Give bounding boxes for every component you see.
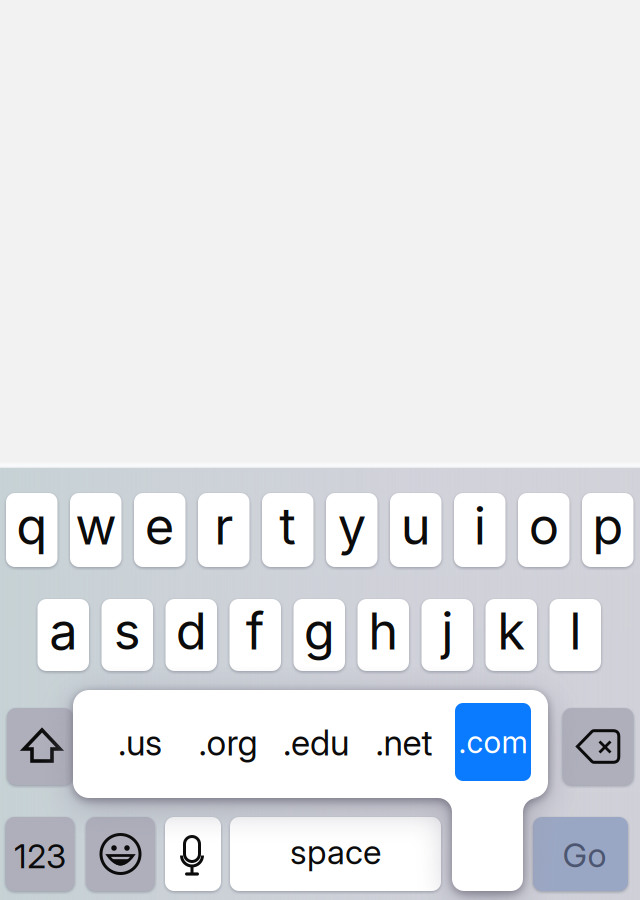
staticText: t xyxy=(279,495,296,557)
button[interactable]: g xyxy=(293,599,345,671)
button[interactable]: p xyxy=(582,493,633,567)
button[interactable]: q xyxy=(6,493,57,567)
button[interactable]: o xyxy=(518,493,569,567)
button[interactable]: t xyxy=(262,493,313,567)
button[interactable]: .edu xyxy=(274,698,358,792)
staticText: .us xyxy=(118,722,162,764)
staticText: l xyxy=(569,600,581,662)
button[interactable]: l xyxy=(549,599,601,671)
staticText: o xyxy=(529,495,559,557)
button[interactable]: Go xyxy=(533,817,628,891)
staticText: Go xyxy=(562,835,606,875)
button[interactable]: e xyxy=(134,493,185,567)
staticText: d xyxy=(176,600,207,662)
button[interactable]: r xyxy=(198,493,249,567)
button[interactable]: i xyxy=(454,493,505,567)
staticText: 123 xyxy=(14,836,66,876)
button[interactable]: d xyxy=(165,599,217,671)
button[interactable]: a xyxy=(37,599,89,671)
button[interactable]: 123 xyxy=(5,817,74,891)
staticText: j xyxy=(441,600,453,662)
button[interactable]: Dictation xyxy=(165,817,221,891)
button[interactable]: u xyxy=(390,493,441,567)
staticText: y xyxy=(338,495,366,557)
staticText: f xyxy=(246,600,265,662)
button[interactable]: Shift xyxy=(7,708,73,785)
staticText: p xyxy=(592,495,623,557)
staticText: .com xyxy=(458,723,527,760)
staticText: s xyxy=(114,600,141,662)
button[interactable]: w xyxy=(70,493,121,567)
staticText: k xyxy=(497,600,525,662)
button[interactable]: .net xyxy=(362,698,446,792)
staticText: e xyxy=(145,495,175,557)
staticText: .org xyxy=(198,722,257,764)
staticText: w xyxy=(75,495,116,557)
button[interactable]: .org xyxy=(186,698,270,792)
button[interactable]: .us xyxy=(98,698,182,792)
button[interactable]: k xyxy=(485,599,537,671)
staticText: space xyxy=(290,832,381,872)
button[interactable]: y xyxy=(326,493,377,567)
button[interactable]: h xyxy=(357,599,409,671)
staticText: r xyxy=(214,495,233,557)
staticText: .edu xyxy=(283,722,349,764)
staticText: .net xyxy=(375,722,432,764)
staticText: h xyxy=(368,600,398,662)
staticText: a xyxy=(49,600,77,662)
button[interactable]: s xyxy=(101,599,153,671)
staticText: q xyxy=(16,495,47,557)
staticText: i xyxy=(474,495,486,557)
button[interactable]: j xyxy=(421,599,473,671)
staticText: u xyxy=(401,495,431,557)
button[interactable]: space xyxy=(230,817,441,891)
button[interactable]: f xyxy=(229,599,281,671)
button[interactable]: Emoji xyxy=(86,817,155,891)
button[interactable]: .com xyxy=(455,703,531,781)
button[interactable]: Delete xyxy=(562,708,633,785)
staticText: g xyxy=(304,600,335,662)
